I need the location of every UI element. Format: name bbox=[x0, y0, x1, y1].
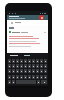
button[interactable]: Key bbox=[40, 69, 43, 73]
button[interactable]: Account bbox=[39, 15, 44, 20]
button[interactable]: Key bbox=[28, 64, 31, 68]
button[interactable]: Key bbox=[24, 75, 27, 79]
button[interactable]: Key bbox=[24, 59, 27, 63]
button[interactable]: Key bbox=[32, 59, 35, 63]
button[interactable]: Key bbox=[16, 75, 19, 79]
button[interactable]: Key bbox=[20, 69, 23, 73]
button[interactable]: Key bbox=[16, 59, 19, 63]
button[interactable]: Key bbox=[28, 75, 31, 79]
button[interactable]: Key bbox=[8, 69, 11, 73]
button[interactable] bbox=[9, 31, 46, 33]
button[interactable]: Emoji bbox=[12, 80, 15, 84]
button[interactable]: Key bbox=[12, 75, 15, 79]
button[interactable]: Key bbox=[20, 59, 23, 63]
button[interactable]: Key bbox=[36, 64, 39, 68]
button[interactable]: Symbols bbox=[8, 80, 11, 84]
button[interactable]: Key bbox=[12, 69, 15, 73]
button[interactable]: Key bbox=[12, 59, 15, 63]
button[interactable]: Period bbox=[37, 80, 40, 84]
button[interactable]: Key bbox=[44, 69, 47, 73]
button[interactable]: Enter bbox=[41, 80, 47, 84]
button[interactable]: Key bbox=[36, 59, 39, 63]
button[interactable]: Key bbox=[32, 75, 35, 79]
button[interactable]: Key bbox=[28, 59, 31, 63]
button[interactable]: Key bbox=[8, 64, 11, 68]
button[interactable]: Key bbox=[8, 75, 11, 79]
button[interactable]: Key bbox=[16, 69, 19, 73]
button[interactable]: Key bbox=[28, 69, 31, 73]
button[interactable]: Key bbox=[20, 64, 23, 68]
button[interactable]: Key bbox=[24, 69, 27, 73]
button[interactable]: Key bbox=[32, 64, 35, 68]
button[interactable]: Key bbox=[24, 64, 27, 68]
button[interactable]: Key bbox=[44, 75, 47, 79]
button[interactable]: Key bbox=[32, 69, 35, 73]
button[interactable]: Key bbox=[20, 75, 23, 79]
button[interactable]: Key bbox=[12, 64, 15, 68]
button[interactable]: Key bbox=[36, 69, 39, 73]
button[interactable]: Key bbox=[36, 75, 39, 79]
button[interactable] bbox=[7, 20, 48, 25]
button[interactable]: Key bbox=[16, 64, 19, 68]
button[interactable]: Key bbox=[40, 75, 43, 79]
button[interactable]: Key bbox=[44, 64, 47, 68]
button[interactable]: Key bbox=[40, 64, 43, 68]
button[interactable]: Key bbox=[8, 59, 11, 63]
button[interactable]: Key bbox=[44, 59, 47, 63]
button[interactable]: Key bbox=[40, 59, 43, 63]
